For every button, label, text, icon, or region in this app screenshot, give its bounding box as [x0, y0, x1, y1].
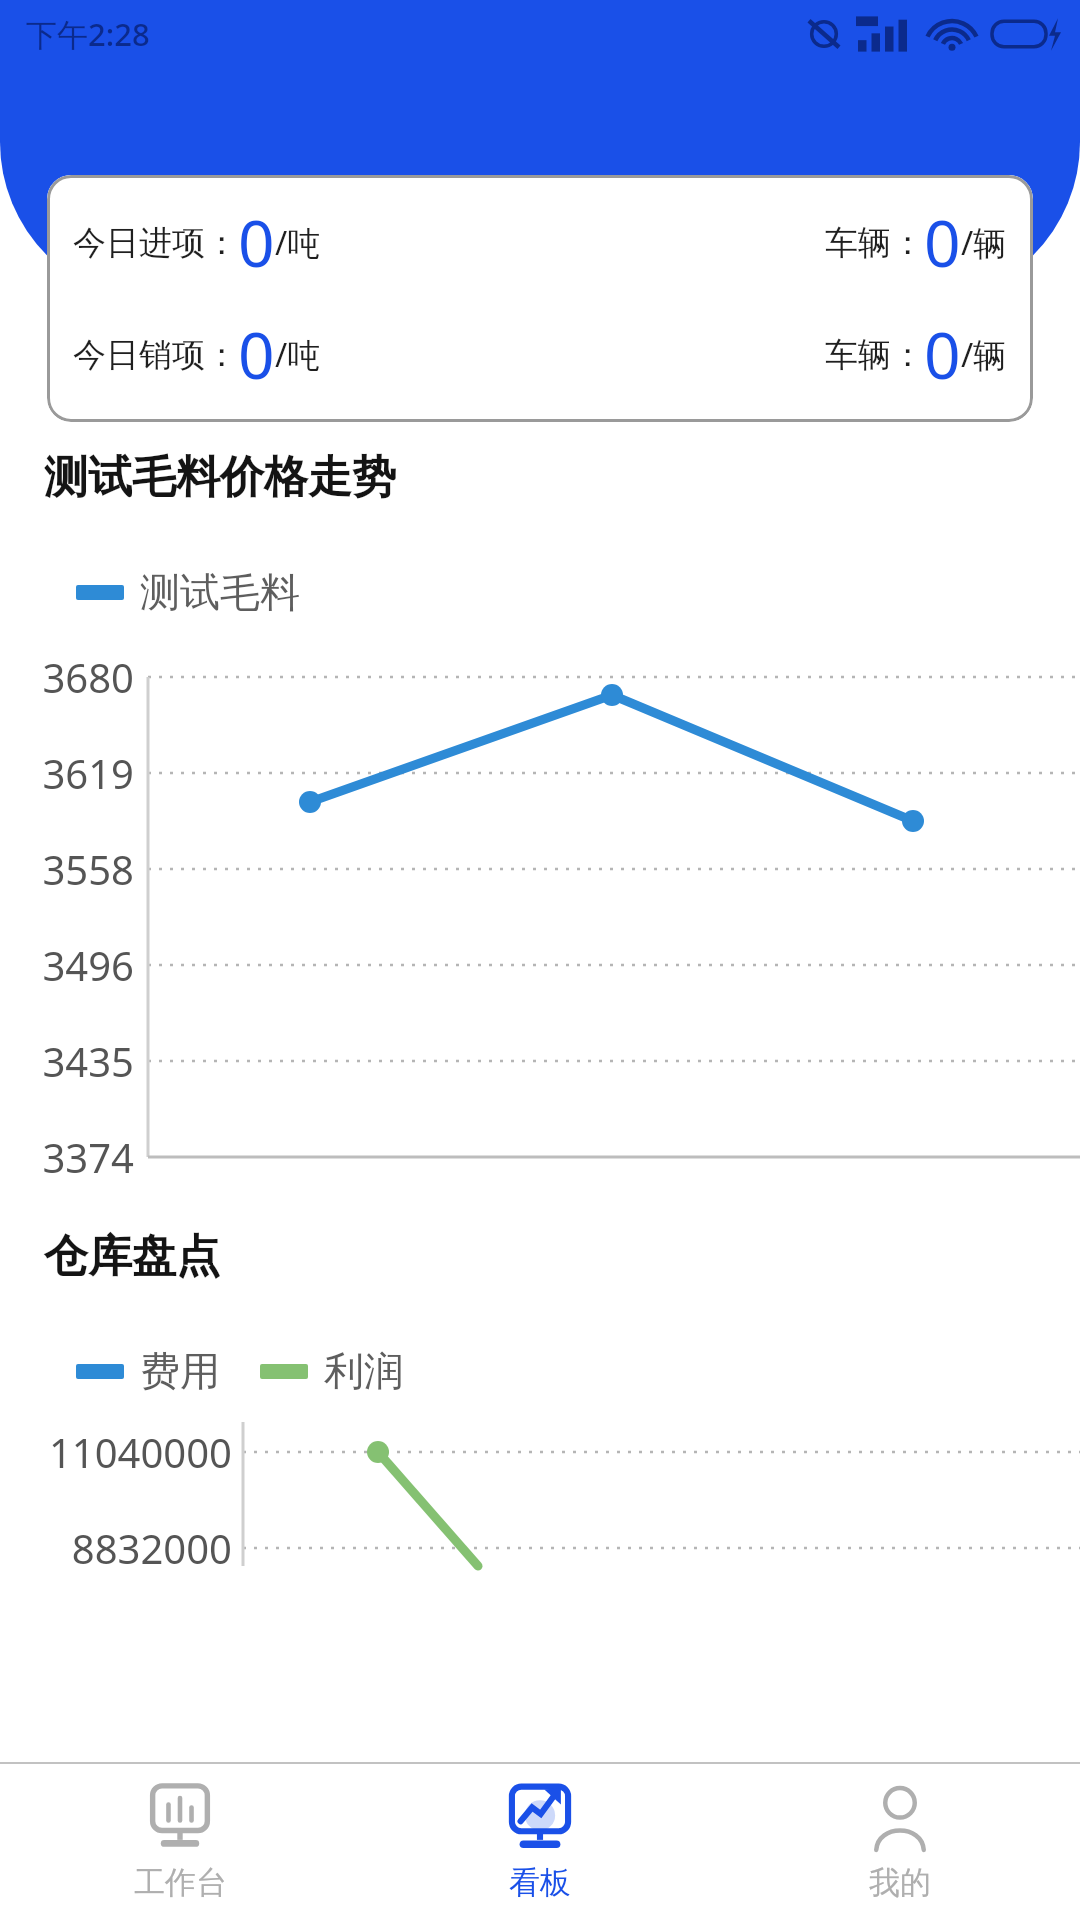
staticText: /辆: [961, 220, 1007, 265]
staticText: 仓库盘点: [44, 1229, 220, 1284]
staticText: 0: [924, 311, 961, 398]
staticText: 测试毛料价格走势: [44, 450, 396, 505]
button[interactable]: 看板: [360, 1764, 720, 1920]
staticText: /辆: [961, 332, 1007, 377]
staticText: 3680: [0, 650, 134, 704]
staticText: 车辆：: [825, 334, 924, 376]
staticText: 我的: [869, 1863, 931, 1902]
button[interactable]: 我的: [720, 1764, 1080, 1920]
staticText: 8832000: [0, 1521, 232, 1575]
staticText: 0: [238, 311, 275, 398]
staticText: 车辆：: [825, 222, 924, 264]
staticText: 测试毛料: [140, 567, 300, 617]
staticText: 11040000: [0, 1425, 232, 1479]
button[interactable]: 工作台: [0, 1764, 360, 1920]
staticText: /吨: [275, 332, 321, 377]
staticText: 看板: [509, 1863, 571, 1902]
staticText: 3619: [0, 746, 134, 800]
staticText: 费用: [140, 1346, 220, 1396]
staticText: 3558: [0, 842, 134, 896]
button[interactable]: 今日进项：: [47, 175, 1033, 422]
staticText: 工作台: [134, 1863, 227, 1902]
staticText: 3374: [0, 1130, 134, 1184]
staticText: 利润: [324, 1346, 404, 1396]
staticText: 3496: [0, 938, 134, 992]
staticText: /吨: [275, 220, 321, 265]
staticText: 3435: [0, 1034, 134, 1088]
staticText: 今日销项：: [73, 334, 238, 376]
staticText: 0: [924, 199, 961, 286]
staticText: 下午2:28: [26, 13, 150, 55]
staticText: 0: [238, 199, 275, 286]
staticText: 今日进项：: [73, 222, 238, 264]
